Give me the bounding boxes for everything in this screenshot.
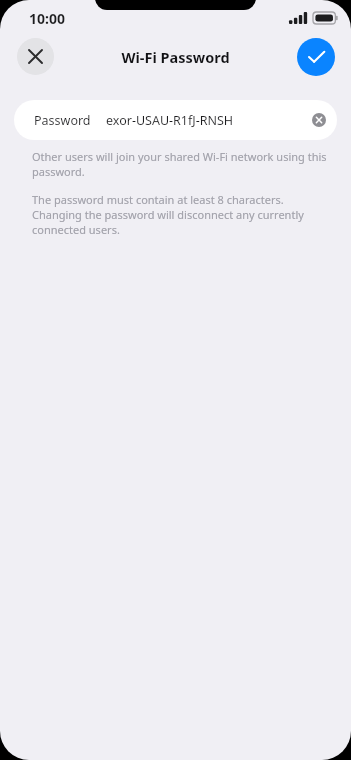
button[interactable]: Close — [17, 38, 54, 75]
button[interactable]: Confirm — [297, 38, 335, 76]
staticText: exor-USAU-R1fJ-RNSH — [106, 112, 234, 129]
staticText: The password must contain at least 8 cha… — [32, 192, 329, 237]
button[interactable]: Clear password — [306, 107, 332, 133]
staticText: Other users will join your shared Wi-Fi … — [32, 149, 329, 179]
button[interactable]: Password — [14, 100, 337, 140]
staticText: Wi-Fi Password — [121, 47, 230, 67]
staticText: 10:00 — [29, 9, 65, 28]
staticText: Password — [34, 112, 91, 129]
